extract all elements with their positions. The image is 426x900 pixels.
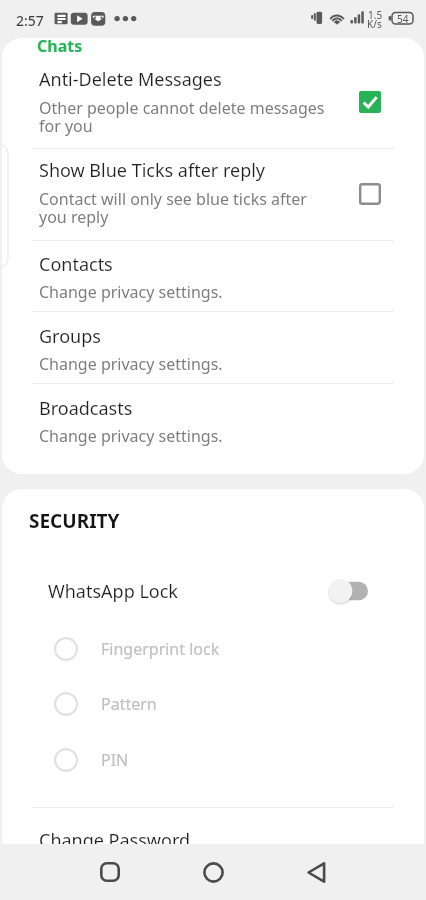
button[interactable]: Contacts (2, 252, 424, 303)
staticText: Broadcasts (39, 396, 133, 421)
staticText: K/s (367, 17, 382, 31)
button[interactable]: Broadcasts (2, 396, 424, 447)
staticText: Anti-Delete Messages (39, 67, 222, 92)
staticText: 1.5 (368, 8, 383, 22)
staticText: Change privacy settings. (39, 353, 223, 375)
button[interactable]: Pattern (2, 682, 424, 726)
staticText: Show Blue Ticks after reply (39, 158, 266, 183)
staticText: PIN (101, 749, 129, 771)
staticText: Change privacy settings. (39, 281, 223, 303)
staticText: 2:57 (16, 11, 44, 30)
staticText: 54 (397, 12, 409, 26)
staticText: Change Password (39, 828, 191, 853)
staticText: Change privacy settings. (39, 425, 223, 447)
button[interactable]: PIN (2, 738, 424, 782)
staticText: Other people cannot delete messages for … (39, 97, 325, 136)
button[interactable]: Groups (2, 324, 424, 375)
button[interactable]: Home (189, 848, 237, 896)
staticText: Contacts (39, 252, 113, 277)
button[interactable]: Fingerprint lock (2, 627, 424, 671)
staticText: Groups (39, 324, 101, 349)
staticText: SECURITY (29, 508, 120, 534)
staticText: Contact will only see blue ticks after y… (39, 188, 307, 227)
button[interactable]: WhatsApp Lock (2, 569, 424, 613)
button[interactable]: Back (292, 848, 340, 896)
button[interactable]: Anti-Delete Messages (2, 67, 424, 136)
staticText: WhatsApp Lock (48, 579, 328, 604)
button[interactable]: Recents (86, 848, 134, 896)
staticText: Chats (37, 38, 83, 57)
staticText: Fingerprint lock (101, 638, 220, 660)
staticText: Pattern (101, 693, 157, 715)
button[interactable]: Show Blue Ticks after reply (2, 158, 424, 227)
